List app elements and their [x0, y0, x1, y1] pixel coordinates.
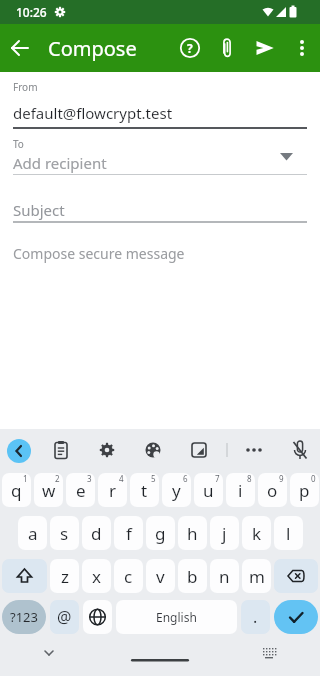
button[interactable]: e	[66, 473, 95, 507]
button[interactable]: default@flowcrypt.test	[13, 98, 307, 130]
staticText: 5	[151, 473, 156, 484]
button[interactable]: k	[242, 516, 271, 550]
staticText: To	[13, 137, 24, 151]
button[interactable]	[288, 34, 316, 62]
button[interactable]	[240, 436, 268, 464]
button[interactable]: @	[50, 600, 79, 634]
staticText: n	[219, 565, 230, 588]
button[interactable]: m	[242, 559, 271, 593]
button[interactable]: Subject	[13, 199, 307, 224]
staticText: ?123	[10, 608, 38, 626]
staticText: d	[91, 522, 102, 545]
button[interactable]: Add recipient	[13, 150, 307, 176]
staticText: f	[126, 522, 132, 545]
staticText: 3	[87, 473, 92, 484]
staticText: Compose secure message	[13, 244, 185, 263]
button[interactable]: q	[2, 473, 31, 507]
staticText: q	[11, 479, 22, 502]
button[interactable]	[47, 436, 75, 464]
button[interactable]: i	[226, 473, 255, 507]
button[interactable]	[83, 600, 112, 634]
button[interactable]: h	[178, 516, 207, 550]
staticText: From	[13, 80, 38, 94]
staticText: s	[60, 522, 69, 545]
staticText: u	[203, 479, 214, 502]
button[interactable]: j	[210, 516, 239, 550]
staticText: .	[253, 606, 258, 628]
staticText: Subject	[13, 200, 65, 220]
button[interactable]: u	[194, 473, 223, 507]
staticText: h	[187, 522, 198, 545]
staticText: e	[76, 479, 86, 502]
staticText: t	[141, 479, 148, 502]
button[interactable]: r	[98, 473, 127, 507]
button[interactable]: f	[114, 516, 143, 550]
button[interactable]: a	[18, 516, 47, 550]
button[interactable]: o	[258, 473, 287, 507]
staticText: o	[267, 479, 278, 502]
button[interactable]: p	[290, 473, 319, 507]
staticText: default@flowcrypt.test	[13, 103, 173, 123]
staticText: v	[156, 565, 165, 588]
button[interactable]: y	[162, 473, 191, 507]
staticText: 0	[311, 473, 316, 484]
staticText: b	[187, 565, 198, 588]
button[interactable]: n	[210, 559, 239, 593]
staticText: ?	[187, 40, 193, 56]
staticText: w	[42, 479, 56, 502]
button[interactable]	[213, 34, 241, 62]
button[interactable]: d	[82, 516, 111, 550]
staticText: c	[124, 565, 133, 588]
button[interactable]: t	[130, 473, 159, 507]
button[interactable]	[2, 559, 47, 593]
button[interactable]: x	[82, 559, 111, 593]
button[interactable]: b	[178, 559, 207, 593]
staticText: 1	[23, 473, 28, 484]
staticText: y	[172, 479, 181, 502]
button[interactable]	[286, 436, 314, 464]
button[interactable]: z	[50, 559, 79, 593]
staticText: a	[28, 522, 38, 545]
staticText: r	[109, 479, 117, 502]
staticText: English	[156, 609, 197, 625]
button[interactable]: g	[146, 516, 175, 550]
staticText: x	[92, 565, 101, 588]
button[interactable]	[7, 439, 31, 463]
button[interactable]: w	[34, 473, 63, 507]
button[interactable]	[6, 34, 34, 62]
button[interactable]	[274, 559, 318, 593]
button[interactable]: l	[274, 516, 303, 550]
staticText: 4	[119, 473, 124, 484]
button[interactable]: Compose secure message	[13, 244, 307, 268]
button[interactable]: .	[241, 600, 270, 634]
button[interactable]: v	[146, 559, 175, 593]
button[interactable]: ?	[176, 34, 204, 62]
staticText: z	[61, 565, 69, 588]
staticText: k	[252, 522, 262, 545]
staticText: @	[57, 606, 72, 628]
button[interactable]	[185, 436, 213, 464]
staticText: Add recipient	[13, 153, 107, 173]
button[interactable]: English	[116, 600, 237, 634]
staticText: Compose	[48, 35, 137, 62]
staticText: 2	[55, 473, 60, 484]
staticText: j	[222, 522, 227, 545]
button[interactable]	[251, 34, 279, 62]
button[interactable]	[93, 436, 121, 464]
staticText: 7	[215, 473, 220, 484]
staticText: m	[249, 565, 265, 588]
staticText: 6	[183, 473, 188, 484]
staticText: p	[299, 479, 310, 502]
staticText: 8	[247, 473, 252, 484]
staticText: l	[286, 522, 291, 545]
button[interactable]: c	[114, 559, 143, 593]
button[interactable]: ?123	[2, 600, 46, 634]
staticText: g	[155, 522, 166, 545]
staticText: 10:26	[16, 4, 47, 20]
button[interactable]	[274, 600, 318, 634]
button[interactable]	[139, 436, 167, 464]
staticText: i	[238, 479, 243, 502]
button[interactable]: s	[50, 516, 79, 550]
staticText: 9	[279, 473, 284, 484]
